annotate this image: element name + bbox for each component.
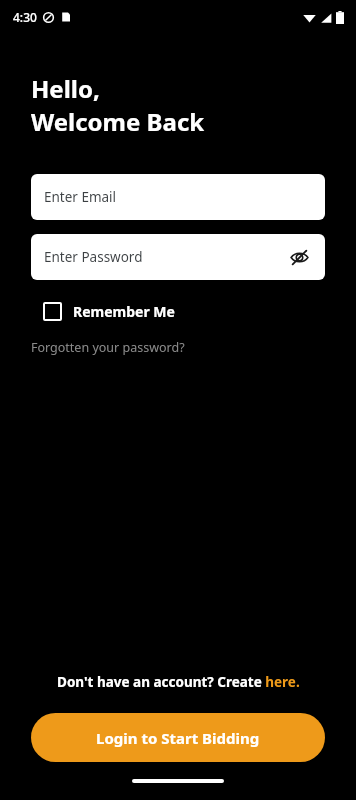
button[interactable]: Enter Password	[31, 234, 325, 280]
staticText: Enter Email	[44, 188, 117, 206]
button[interactable]: Login to Start Bidding	[31, 713, 325, 762]
staticText: Hello,	[31, 72, 100, 105]
staticText: 4:30	[13, 9, 37, 25]
button[interactable]: Enter Email	[31, 174, 325, 220]
button[interactable]: Remember Me	[31, 298, 187, 325]
staticText: Forgotten your password?	[31, 339, 185, 356]
button[interactable]: Don't have an account? Create here.	[57, 673, 300, 691]
staticText: Enter Password	[44, 248, 143, 266]
button[interactable]: Show password	[286, 244, 312, 270]
staticText: Remember Me	[73, 302, 175, 321]
staticText: Login to Start Bidding	[96, 728, 260, 748]
staticText: Don't have an account? Create here.	[57, 673, 300, 691]
staticText: Welcome Back	[31, 105, 205, 138]
button[interactable]: Forgotten your password?	[31, 339, 185, 356]
